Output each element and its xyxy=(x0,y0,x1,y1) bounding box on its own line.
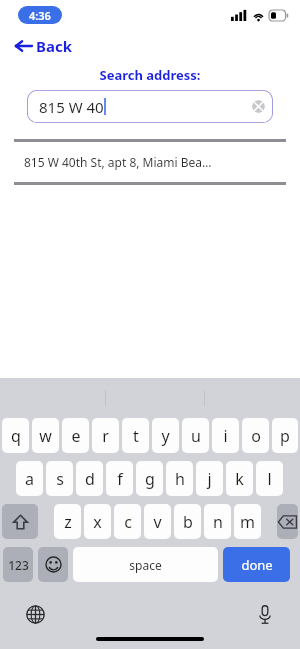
staticText: q xyxy=(11,425,21,447)
staticText: o xyxy=(251,425,261,447)
button[interactable]: p xyxy=(272,418,298,453)
button[interactable]: 815 W 40th St, apt 8, Miami Bea… xyxy=(0,139,300,185)
staticText: t xyxy=(133,425,139,447)
button[interactable]: Dictation xyxy=(252,601,278,627)
button[interactable]: Change keyboard language xyxy=(22,601,48,627)
staticText: w xyxy=(39,425,52,447)
staticText: x xyxy=(93,511,102,533)
button[interactable]: z xyxy=(54,504,81,539)
staticText: m xyxy=(240,511,255,533)
staticText: a xyxy=(25,468,34,490)
button[interactable]: space xyxy=(73,547,218,582)
button[interactable]: l xyxy=(256,461,283,496)
staticText: c xyxy=(124,511,132,533)
button[interactable]: Back xyxy=(12,34,76,58)
staticText: s xyxy=(56,468,64,490)
staticText: done xyxy=(241,556,273,574)
staticText: 123 xyxy=(8,557,29,573)
button[interactable]: x xyxy=(84,504,111,539)
staticText: g xyxy=(145,468,155,490)
staticText: d xyxy=(85,468,95,490)
staticText: i xyxy=(223,425,228,447)
button[interactable]: e xyxy=(62,418,89,453)
staticText: b xyxy=(183,511,193,533)
button[interactable]: Emoji xyxy=(38,547,68,582)
button[interactable]: i xyxy=(212,418,239,453)
button[interactable]: 815 W 40 xyxy=(27,90,273,123)
staticText: k xyxy=(235,468,244,490)
staticText: f xyxy=(117,468,123,490)
staticText: z xyxy=(64,511,72,533)
button[interactable]: m xyxy=(234,504,261,539)
button[interactable]: n xyxy=(204,504,231,539)
staticText: n xyxy=(213,511,223,533)
staticText: Search address: xyxy=(0,66,300,84)
button[interactable]: w xyxy=(32,418,59,453)
button[interactable]: u xyxy=(182,418,209,453)
button[interactable]: done xyxy=(223,547,290,582)
staticText: 815 W 40 xyxy=(39,97,104,117)
button[interactable]: Backspace xyxy=(277,504,298,539)
button[interactable]: c xyxy=(114,504,141,539)
staticText: y xyxy=(161,425,170,447)
staticText: e xyxy=(71,425,81,447)
button[interactable]: y xyxy=(152,418,179,453)
button[interactable]: h xyxy=(166,461,193,496)
button[interactable]: v xyxy=(144,504,171,539)
button[interactable]: b xyxy=(174,504,201,539)
button[interactable]: a xyxy=(16,461,43,496)
staticText: 815 W 40th St, apt 8, Miami Bea… xyxy=(24,154,212,170)
button[interactable]: s xyxy=(46,461,73,496)
button[interactable]: g xyxy=(136,461,163,496)
staticText: h xyxy=(175,468,185,490)
staticText: v xyxy=(153,511,162,533)
button[interactable]: Clear text xyxy=(252,100,265,113)
button[interactable]: 123 xyxy=(3,547,33,582)
staticText: space xyxy=(129,557,162,573)
button[interactable]: Shift xyxy=(2,504,38,539)
staticText: u xyxy=(191,425,201,447)
staticText: Back xyxy=(36,36,73,56)
button[interactable]: f xyxy=(106,461,133,496)
button[interactable]: k xyxy=(226,461,253,496)
button[interactable]: j xyxy=(196,461,223,496)
button[interactable]: d xyxy=(76,461,103,496)
staticText: p xyxy=(280,425,290,447)
button[interactable]: q xyxy=(2,418,29,453)
button[interactable]: t xyxy=(122,418,149,453)
staticText: l xyxy=(267,468,272,490)
staticText: r xyxy=(102,425,109,447)
button[interactable]: r xyxy=(92,418,119,453)
button[interactable]: o xyxy=(242,418,269,453)
staticText: 4:36 xyxy=(29,8,51,23)
staticText: j xyxy=(207,468,212,490)
